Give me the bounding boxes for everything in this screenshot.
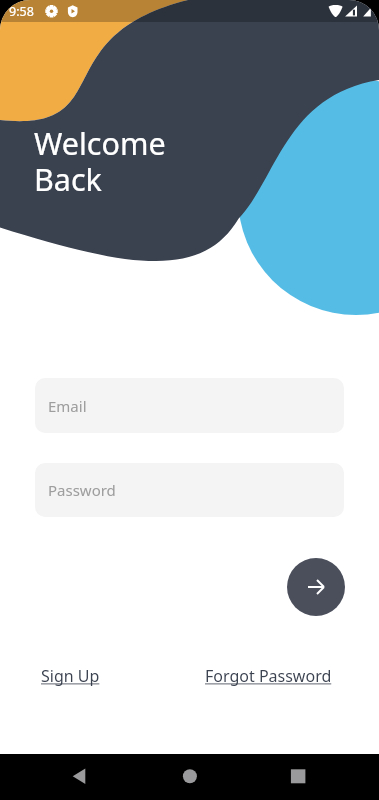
- button[interactable]: Email: [35, 378, 344, 433]
- staticText: 9:58: [9, 3, 34, 20]
- staticText: Welcome Back: [34, 122, 166, 200]
- button[interactable]: Back: [58, 755, 102, 799]
- staticText: Password: [48, 480, 116, 500]
- button[interactable]: Forgot Password: [202, 663, 335, 689]
- button[interactable]: Sign Up: [38, 663, 103, 689]
- staticText: Sign Up: [41, 665, 100, 687]
- staticText: Forgot Password: [205, 665, 332, 687]
- button[interactable]: Home: [168, 755, 212, 799]
- button[interactable]: Sign in: [287, 558, 345, 616]
- button[interactable]: Recents: [280, 755, 324, 799]
- staticText: Email: [48, 396, 87, 416]
- button[interactable]: Password: [35, 463, 344, 517]
